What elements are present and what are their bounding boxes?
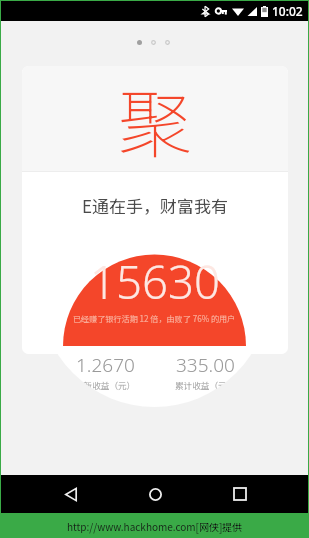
button[interactable]: Home	[130, 475, 180, 513]
staticText: 聚	[118, 66, 192, 170]
staticText: 最新收益（元）	[75, 379, 136, 391]
staticText: 10:02	[272, 3, 303, 19]
button[interactable]: 聚	[22, 66, 288, 354]
staticText: 累计收益（元）	[175, 379, 236, 391]
staticText: 1.2670	[76, 352, 135, 378]
staticText: 15630	[90, 250, 220, 312]
button[interactable]: Recent apps	[215, 475, 265, 513]
staticText: 335.00	[176, 352, 235, 378]
staticText: 已经赚了银行活期 12 倍，由败了 76% 的用户	[73, 313, 236, 325]
staticText: http://www.hackhome.com[网侠]提供	[67, 519, 243, 533]
staticText: E通在手，财富我有	[82, 193, 229, 218]
button[interactable]: Back	[46, 475, 96, 513]
